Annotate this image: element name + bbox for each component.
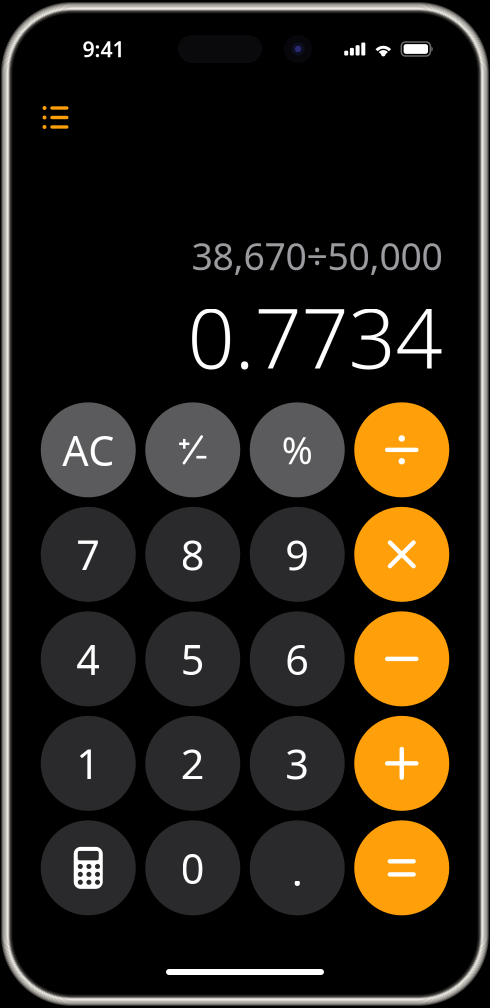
staticText: 5 (181, 631, 205, 686)
staticText: 7 (76, 527, 100, 582)
staticText: 4 (76, 631, 100, 686)
button[interactable]: 1 (41, 716, 136, 811)
staticText: 8 (181, 527, 205, 582)
button[interactable]: 5 (145, 611, 240, 706)
button[interactable]: 2 (145, 716, 240, 811)
staticText: 3 (285, 736, 309, 791)
button[interactable]: Toggle sign (145, 402, 240, 497)
button[interactable]: Equals (354, 820, 449, 915)
staticText: 38,670÷50,000 (191, 231, 442, 281)
button[interactable]: Add (354, 716, 449, 811)
staticText: 9:41 (82, 35, 124, 63)
staticText: . (292, 842, 303, 897)
button[interactable]: 6 (250, 611, 345, 706)
button[interactable]: 3 (250, 716, 345, 811)
button[interactable]: 0 (145, 820, 240, 915)
button[interactable]: Multiply (354, 507, 449, 602)
staticText: AC (62, 422, 114, 477)
staticText: 0.7734 (187, 282, 442, 391)
button[interactable]: % (250, 402, 345, 497)
button[interactable]: 4 (41, 611, 136, 706)
staticText: 6 (285, 631, 309, 686)
button[interactable]: History (30, 94, 80, 141)
button[interactable]: Divide (354, 402, 449, 497)
staticText: 1 (76, 736, 100, 791)
button[interactable]: 8 (145, 507, 240, 602)
button[interactable]: . (250, 820, 345, 915)
staticText: 0 (181, 840, 205, 895)
button[interactable]: AC (41, 402, 136, 497)
button[interactable]: Calculator (41, 820, 136, 915)
button[interactable]: Subtract (354, 611, 449, 706)
button[interactable]: 9 (250, 507, 345, 602)
staticText: 9 (285, 527, 309, 582)
staticText: % (282, 425, 313, 475)
button[interactable]: 7 (41, 507, 136, 602)
staticText: 2 (181, 736, 205, 791)
